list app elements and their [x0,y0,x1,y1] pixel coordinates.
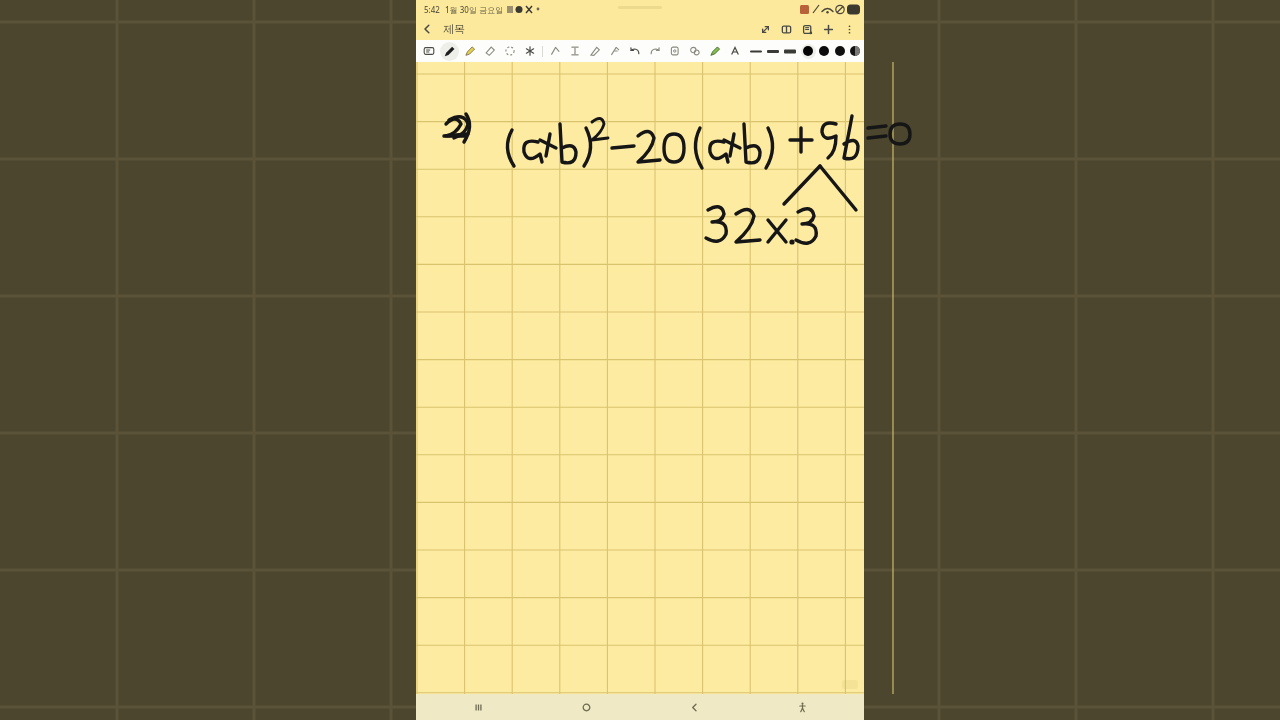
button[interactable]: Marker [705,41,725,61]
button[interactable]: Pen settings [585,41,605,61]
button[interactable]: Undo [625,41,645,61]
button[interactable]: Text box [419,41,439,61]
button[interactable]: Text convert [565,41,585,61]
button[interactable]: Shape convert [545,41,565,61]
button[interactable]: Lock [665,41,685,61]
button[interactable]: Colour [800,43,816,59]
button[interactable]: Highlighter [460,41,480,61]
button[interactable]: Lasso [605,41,625,61]
button[interactable]: Magic [520,41,540,61]
button[interactable]: Recents [465,694,491,720]
button[interactable]: Pen [439,41,460,62]
button[interactable]: View mode [776,19,797,40]
button[interactable]: Redo [645,41,665,61]
staticText: 5:42 [424,4,440,15]
button[interactable]: More options [839,19,860,40]
button[interactable]: Colour [832,43,848,59]
button[interactable]: Selection [500,41,520,61]
staticText: 제목 [443,22,465,36]
button[interactable]: Stroke width [747,41,764,61]
button[interactable]: Stroke width [781,41,798,61]
button[interactable]: Back [681,694,707,720]
button[interactable]: Expand [755,19,776,40]
staticText: 1월 30일 금요일 [445,4,503,15]
button[interactable]: Home [573,694,599,720]
button[interactable]: 제목 [441,20,467,38]
button[interactable]: Add [818,19,839,40]
button[interactable]: Accessibility [789,694,815,720]
button[interactable]: Eraser [480,41,500,61]
button[interactable]: Colour [848,43,861,59]
button[interactable]: Fill [685,41,705,61]
button[interactable]: Colour [816,43,832,59]
button[interactable]: Save note [797,19,818,40]
button[interactable]: Back [416,18,438,40]
button[interactable]: Stroke width [764,41,781,61]
button[interactable]: Font [725,41,745,61]
